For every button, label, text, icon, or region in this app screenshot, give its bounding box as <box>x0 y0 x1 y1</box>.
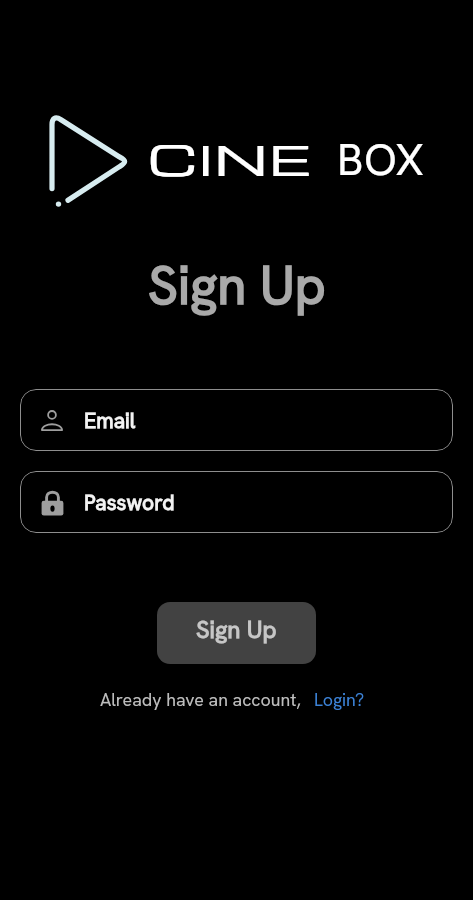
staticText: Password <box>84 489 175 516</box>
staticText: BOX <box>337 131 425 188</box>
button[interactable]: Sign Up <box>157 602 316 664</box>
button[interactable]: Email field <box>20 389 453 451</box>
staticText: Login? <box>314 688 365 711</box>
staticText: Sign Up <box>148 251 326 320</box>
staticText: CINE <box>149 130 313 187</box>
staticText: CINE <box>148 130 312 187</box>
button[interactable]: Login? <box>314 688 365 711</box>
staticText: Email <box>84 407 136 434</box>
staticText: Sign Up <box>196 614 277 645</box>
button[interactable]: Password field <box>20 471 453 533</box>
staticText: Already have an account, <box>100 688 301 711</box>
